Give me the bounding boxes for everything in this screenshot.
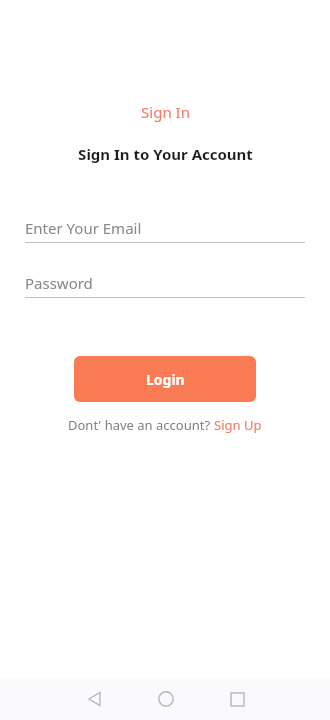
button[interactable]: Login (74, 356, 256, 402)
staticText: Enter Your Email (25, 218, 142, 238)
button[interactable]: Recents (202, 678, 272, 720)
button[interactable]: Sign Up (214, 416, 262, 434)
button[interactable]: Enter Your Email (25, 216, 305, 243)
button[interactable]: Password (25, 271, 305, 298)
button[interactable]: Home (131, 678, 201, 720)
staticText: Sign In (141, 102, 190, 122)
staticText: Login (146, 370, 185, 389)
button[interactable]: Sign In (133, 100, 198, 124)
staticText: Password (25, 273, 93, 293)
staticText: Sign Up (214, 416, 262, 434)
staticText: Dont' have an account? (68, 416, 214, 434)
staticText: Sign In to Your Account (78, 144, 253, 164)
button[interactable]: Back (60, 678, 130, 720)
